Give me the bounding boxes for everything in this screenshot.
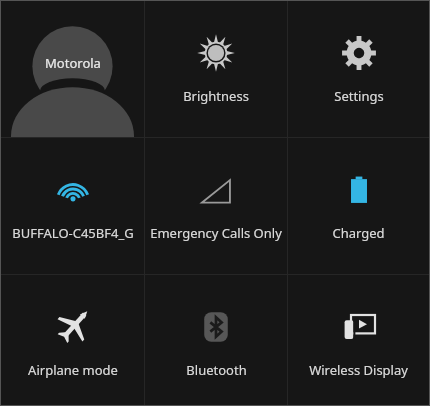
button[interactable]: User Motorola	[1, 1, 144, 137]
other: Wireless Display	[339, 307, 379, 347]
button[interactable]: Settings	[288, 1, 429, 137]
staticText: Motorola	[45, 54, 101, 72]
button[interactable]: Brightness	[145, 1, 287, 137]
other: Brightness	[196, 33, 236, 73]
other: Mobile signal	[199, 173, 233, 207]
other: Wi-Fi	[56, 173, 90, 207]
other: Bluetooth	[197, 308, 235, 346]
other: Battery charged	[342, 173, 376, 207]
other: User Motorola	[1, 1, 144, 137]
staticText: Wireless Display	[309, 361, 408, 379]
other: Settings	[341, 35, 377, 71]
staticText: BUFFALO-C45BF4_G	[12, 224, 134, 242]
staticText: Settings	[334, 87, 384, 105]
staticText: Brightness	[183, 87, 249, 105]
button[interactable]: Wireless Display	[288, 275, 429, 405]
button[interactable]: Mobile signal	[145, 138, 287, 274]
staticText: Airplane mode	[28, 361, 118, 379]
staticText: Bluetooth	[186, 361, 247, 379]
other: Airplane mode	[54, 308, 92, 346]
staticText: Charged	[332, 224, 385, 242]
staticText: Emergency Calls Only	[150, 224, 282, 242]
button[interactable]: Bluetooth	[145, 275, 287, 405]
button[interactable]: Battery charged	[288, 138, 429, 274]
button[interactable]: Wi-Fi	[1, 138, 144, 274]
button[interactable]: Airplane mode	[1, 275, 144, 405]
